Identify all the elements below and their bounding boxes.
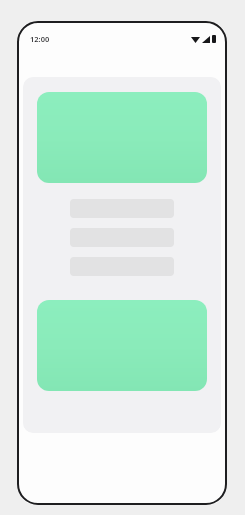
button[interactable]: Featured image — [37, 300, 207, 391]
other: Wi-Fi — [191, 36, 200, 43]
other: Mobile signal — [202, 36, 210, 43]
button[interactable]: Featured image — [37, 92, 207, 183]
staticText: 12:00 — [30, 34, 50, 44]
other: Battery — [212, 35, 216, 43]
